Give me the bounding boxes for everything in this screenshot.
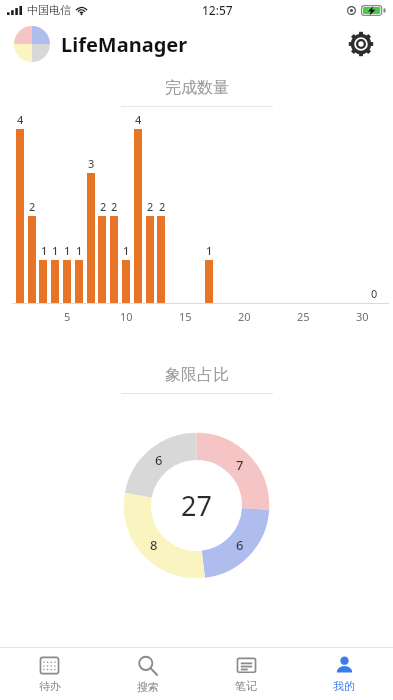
staticText: 1 (76, 243, 83, 258)
button[interactable]: Settings (343, 26, 379, 62)
staticText: 搜索 (137, 680, 159, 694)
staticText: 4 (135, 112, 142, 127)
staticText: 2 (100, 199, 107, 214)
staticText: 我的 (333, 679, 355, 693)
staticText: 完成数量 (165, 78, 229, 98)
button[interactable]: 搜索 (99, 648, 197, 700)
staticText: 5 (64, 309, 71, 324)
staticText: 10 (120, 309, 133, 324)
staticText: 2 (111, 199, 118, 214)
staticText: 2 (147, 199, 154, 214)
staticText: 6 (155, 451, 163, 469)
staticText: 2 (159, 199, 166, 214)
staticText: 27 (181, 487, 212, 524)
staticText: 1 (123, 243, 130, 258)
staticText: 30 (356, 309, 369, 324)
staticText: 2 (29, 199, 36, 214)
staticText: 25 (297, 309, 310, 324)
staticText: 笔记 (235, 679, 257, 693)
staticText: 1 (52, 243, 59, 258)
staticText: 20 (238, 309, 251, 324)
staticText: 4 (17, 112, 24, 127)
staticText: 1 (41, 243, 48, 258)
staticText: 0 (371, 286, 378, 301)
staticText: 1 (64, 243, 71, 258)
staticText: 3 (88, 156, 95, 171)
staticText: 待办 (39, 679, 61, 693)
staticText: LifeManager (61, 31, 188, 58)
staticText: 象限占比 (165, 365, 229, 385)
staticText: 中国电信 (27, 3, 71, 17)
staticText: 8 (150, 536, 158, 554)
staticText: 1 (206, 243, 213, 258)
staticText: 6 (236, 536, 244, 554)
staticText: 15 (179, 309, 192, 324)
button[interactable]: 待办 (0, 648, 99, 700)
button[interactable]: 笔记 (197, 648, 295, 700)
button[interactable]: 我的 (295, 648, 393, 700)
staticText: 7 (236, 456, 244, 474)
staticText: 12:57 (202, 2, 233, 18)
